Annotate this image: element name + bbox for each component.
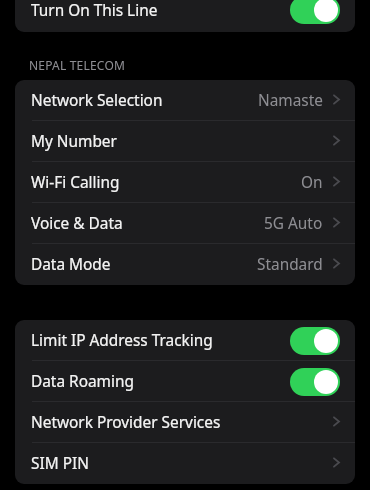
button[interactable]: Voice & Data xyxy=(15,203,355,244)
button[interactable]: Limit IP Address Tracking xyxy=(15,320,355,361)
staticText: Network Selection xyxy=(31,90,163,111)
staticText: On xyxy=(301,172,323,193)
button[interactable]: My Number xyxy=(15,121,355,162)
staticText: Standard xyxy=(257,254,323,275)
button[interactable]: Turn On This Line xyxy=(15,0,355,26)
staticText: Turn On This Line xyxy=(31,0,158,21)
staticText: Limit IP Address Tracking xyxy=(31,330,213,351)
button[interactable]: Toggle on xyxy=(290,0,340,24)
button[interactable]: Wi-Fi Calling xyxy=(15,162,355,203)
button[interactable]: Network Provider Services xyxy=(15,402,355,443)
staticText: My Number xyxy=(31,131,117,152)
staticText: Wi-Fi Calling xyxy=(31,172,120,193)
staticText: 5G Auto xyxy=(264,213,323,234)
staticText: Voice & Data xyxy=(31,213,123,234)
button[interactable]: SIM PIN xyxy=(15,443,355,484)
staticText: SIM PIN xyxy=(31,453,89,474)
button[interactable]: Toggle on xyxy=(290,368,340,396)
button[interactable]: Network Selection xyxy=(15,80,355,121)
button[interactable]: Toggle on xyxy=(290,327,340,355)
staticText: NEPAL TELECOM xyxy=(29,57,126,73)
button[interactable]: Data Roaming xyxy=(15,361,355,402)
button[interactable]: Data Mode xyxy=(15,244,355,285)
staticText: Network Provider Services xyxy=(31,412,221,433)
staticText: Data Mode xyxy=(31,254,111,275)
staticText: Namaste xyxy=(258,90,323,111)
staticText: Data Roaming xyxy=(31,371,134,392)
